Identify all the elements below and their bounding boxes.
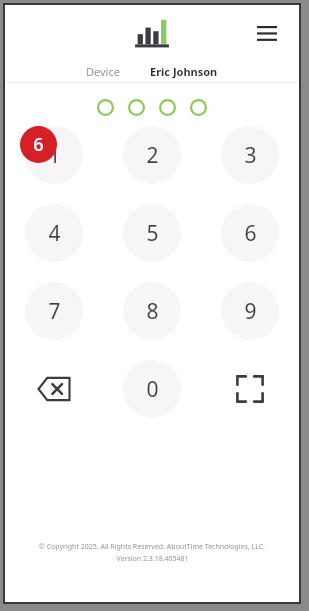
staticText: 1 — [48, 141, 61, 170]
staticText: Version 2.3.18.405481 — [116, 554, 189, 564]
button[interactable]: 3 — [221, 126, 279, 184]
staticText: 0 — [146, 375, 159, 404]
staticText: 8 — [146, 297, 159, 326]
button[interactable]: Backspace — [25, 360, 83, 418]
staticText: Device — [86, 64, 120, 79]
button[interactable]: 0 — [123, 360, 181, 418]
button[interactable]: Menu — [247, 13, 287, 53]
button[interactable]: 7 — [25, 282, 83, 340]
staticText: 9 — [244, 297, 257, 326]
button[interactable]: 4 — [25, 204, 83, 262]
staticText: 7 — [48, 297, 61, 326]
staticText: 2 — [146, 141, 159, 170]
button[interactable]: 8 — [123, 282, 181, 340]
button[interactable]: 2 — [123, 126, 181, 184]
button[interactable]: 1 — [25, 126, 83, 184]
button[interactable]: 6 — [221, 204, 279, 262]
button[interactable]: 9 — [221, 282, 279, 340]
staticText: Eric Johnson — [150, 64, 218, 79]
staticText: 6 — [244, 219, 257, 248]
button[interactable]: Eric Johnson — [142, 62, 226, 81]
button[interactable]: 5 — [123, 204, 181, 262]
button[interactable]: Scan code — [221, 360, 279, 418]
staticText: 4 — [48, 219, 61, 248]
staticText: © Copyright 2025. All Rights Reserved. A… — [39, 542, 265, 552]
staticText: 5 — [146, 219, 159, 248]
button[interactable]: Device — [78, 62, 128, 81]
staticText: 6 — [33, 132, 44, 157]
staticText: 3 — [244, 141, 257, 170]
